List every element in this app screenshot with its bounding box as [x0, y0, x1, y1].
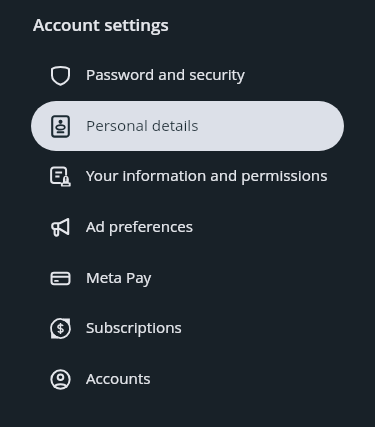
staticText: Personal details [86, 115, 199, 136]
staticText: Accounts [86, 368, 151, 389]
button[interactable]: Your information and permissions [31, 151, 344, 201]
button[interactable]: Meta Pay [31, 253, 344, 303]
button[interactable]: Personal details [31, 101, 344, 151]
staticText: Password and security [86, 64, 245, 85]
staticText: Account settings [33, 13, 169, 36]
button[interactable]: Password and security [31, 50, 344, 100]
button[interactable]: Subscriptions [31, 303, 344, 353]
staticText: Subscriptions [86, 317, 182, 338]
staticText: Your information and permissions [86, 165, 328, 186]
button[interactable]: Accounts [31, 354, 344, 404]
button[interactable]: Ad preferences [31, 202, 344, 252]
staticText: Meta Pay [86, 267, 152, 288]
staticText: Ad preferences [86, 216, 193, 237]
